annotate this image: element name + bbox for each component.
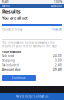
staticText: Continue <box>12 76 26 80</box>
staticText: Your account <box>2 50 21 54</box>
staticText: You are all set <box>2 15 28 21</box>
staticText: Updated today <box>2 28 22 31</box>
staticText: Account <box>51 4 62 8</box>
button[interactable]: Continue <box>2 75 36 81</box>
button[interactable]: View all <box>52 28 62 31</box>
staticText: 3.00 <box>55 59 62 62</box>
staticText: 29.40 <box>53 68 62 71</box>
staticText: Sub total <box>2 54 14 58</box>
button[interactable]: Need help? Contact us <box>0 93 64 100</box>
staticText: 2.40 <box>55 63 62 67</box>
staticText: Shipping <box>2 59 15 62</box>
staticText: Need help? Contact us <box>16 95 48 98</box>
staticText: 24.00 <box>53 54 62 58</box>
staticText: Amount due <box>2 68 21 71</box>
button[interactable]: Account <box>50 4 63 8</box>
staticText: View all <box>52 28 62 31</box>
staticText: 100% <box>54 0 62 4</box>
staticText: 9:41 <box>2 0 9 4</box>
staticText: Results <box>2 8 21 15</box>
button[interactable]: Menu <box>1 4 11 8</box>
staticText: The information below summarises the res… <box>2 41 58 48</box>
staticText: Tax included <box>2 63 19 67</box>
staticText: Menu <box>2 4 10 8</box>
